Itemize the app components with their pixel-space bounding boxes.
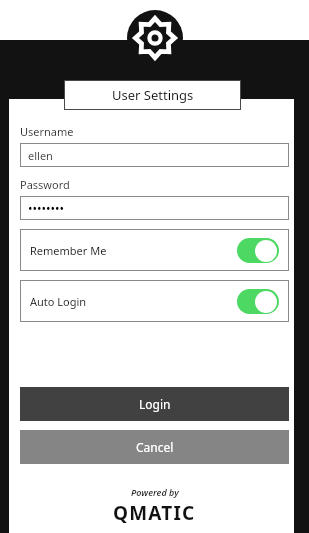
- button[interactable]: Settings: [127, 10, 183, 66]
- staticText: Password: [20, 177, 70, 192]
- staticText: Username: [20, 124, 74, 139]
- button[interactable]: Toggle on: [237, 238, 279, 263]
- staticText: QMATIC: [113, 500, 196, 526]
- button[interactable]: Auto Login: [20, 280, 289, 322]
- button[interactable]: Login: [20, 387, 289, 421]
- button[interactable]: Remember Me: [20, 229, 289, 271]
- button[interactable]: Toggle on: [237, 289, 279, 314]
- staticText: ••••••••: [28, 200, 65, 216]
- button[interactable]: User Settings: [64, 80, 241, 110]
- staticText: Auto Login: [30, 294, 87, 309]
- staticText: Remember Me: [30, 243, 107, 258]
- staticText: Login: [139, 396, 171, 412]
- button[interactable]: Cancel: [20, 430, 289, 464]
- staticText: ellen: [28, 148, 53, 163]
- staticText: Cancel: [136, 439, 174, 455]
- button[interactable]: ••••••••: [20, 196, 289, 220]
- staticText: Powered by: [131, 486, 179, 498]
- staticText: User Settings: [112, 86, 194, 104]
- button[interactable]: ellen: [20, 143, 289, 167]
